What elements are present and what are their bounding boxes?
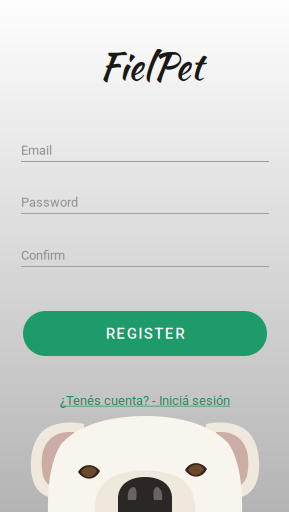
- staticText: Confirm: [21, 248, 65, 263]
- staticText: FielPet: [99, 40, 203, 93]
- staticText: R: [175, 325, 184, 342]
- staticText: Email: [21, 143, 52, 158]
- button[interactable]: R: [23, 311, 267, 356]
- staticText: R: [106, 325, 115, 342]
- staticText: E: [165, 325, 174, 342]
- staticText: G: [127, 325, 137, 342]
- button[interactable]: ¿Tenés cuenta? - Iniciá sesión: [60, 393, 230, 408]
- staticText: S: [144, 325, 153, 342]
- staticText: Password: [21, 195, 78, 210]
- staticText: ¿Tenés cuenta? - Iniciá sesión: [60, 393, 230, 408]
- staticText: T: [154, 325, 163, 342]
- staticText: I: [138, 325, 142, 342]
- staticText: E: [116, 325, 125, 342]
